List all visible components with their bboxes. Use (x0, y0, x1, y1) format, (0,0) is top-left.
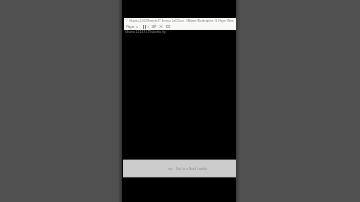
button[interactable]: esc (123, 159, 236, 178)
staticText: esc (168, 167, 173, 171)
other: Ubuntu virtual machine icon (125, 19, 128, 22)
staticText: Ubuntu 22.04 Remote IT Service Call Dout… (129, 19, 236, 23)
button[interactable]: Suspend guest (142, 23, 150, 30)
staticText: Player (126, 25, 135, 29)
button[interactable]: Player (124, 23, 140, 30)
button[interactable]: Enter full screen (165, 23, 171, 30)
button[interactable]: Ubuntu virtual machine icon (124, 18, 236, 23)
button[interactable]: Take snapshot (151, 23, 157, 30)
staticText: Ubuntu 22.04.3 LTS ubuntu tty (125, 30, 166, 34)
staticText: Exit to a Boot Loader (176, 167, 208, 171)
button[interactable]: Send Ctrl Alt Del (158, 23, 164, 30)
